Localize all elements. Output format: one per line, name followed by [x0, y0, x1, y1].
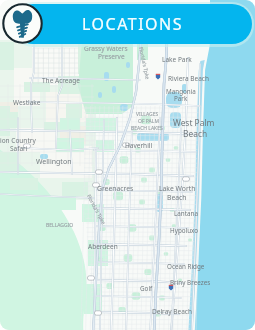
button[interactable]: Dental implant logo — [2, 3, 43, 44]
staticText: LOCATIONS — [82, 13, 184, 35]
staticText: Beach — [167, 193, 187, 202]
staticText: Mangonia — [166, 87, 196, 96]
button[interactable]: LOCATIONS — [13, 4, 252, 44]
staticText: VILLAGES — [136, 111, 159, 118]
staticText: Lake Park — [162, 55, 192, 64]
staticText: BEACH LAKES — [131, 125, 163, 132]
staticText: Haverhill — [125, 141, 153, 150]
staticText: Park — [174, 94, 188, 103]
staticText: Florida's Tpke — [86, 193, 108, 226]
staticText: ion Country — [0, 136, 36, 145]
staticText: Briny Breezes — [170, 278, 211, 287]
staticText: Riviera Beach — [168, 74, 209, 83]
staticText: Wellington — [36, 157, 72, 167]
staticText: Lantana — [174, 209, 198, 218]
staticText: West Palm — [173, 117, 215, 128]
staticText: Westlake — [13, 98, 41, 107]
staticText: Beach — [183, 128, 208, 139]
staticText: Golf — [140, 284, 153, 293]
staticText: Ocean Ridge — [167, 262, 205, 271]
staticText: The Acreage — [42, 76, 80, 85]
staticText: Grassy Waters — [84, 44, 128, 53]
staticText: Lake Worth — [159, 184, 196, 193]
staticText: Greenacres — [97, 184, 134, 193]
staticText: OF PALM — [138, 118, 159, 125]
staticText: Aberdeen — [88, 242, 118, 251]
staticText: BELLAGGIO — [46, 222, 74, 229]
staticText: Delray Beach — [152, 307, 192, 316]
staticText: Hypoluxo — [170, 226, 199, 235]
staticText: Safari — [10, 144, 28, 153]
staticText: Preserve — [98, 52, 125, 61]
staticText: Florida's Tpke — [138, 46, 152, 81]
